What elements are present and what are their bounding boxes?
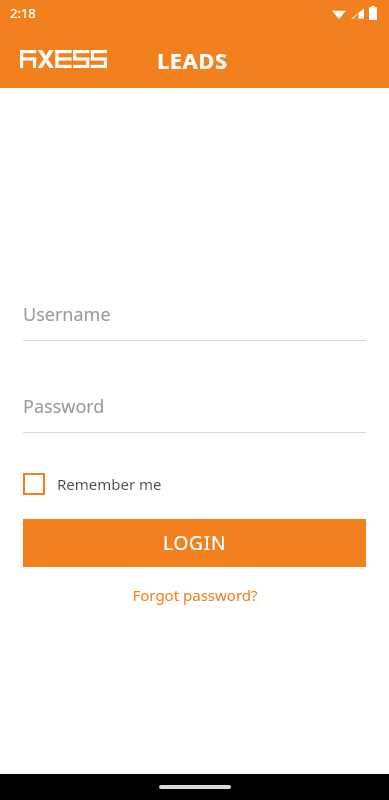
staticText: Username bbox=[23, 302, 111, 327]
button[interactable]: Username bbox=[23, 302, 366, 341]
button[interactable]: Password bbox=[23, 394, 366, 433]
button[interactable]: Forgot password? bbox=[124, 581, 266, 609]
staticText: 2:18 bbox=[10, 4, 36, 22]
staticText: LOGIN bbox=[163, 530, 227, 556]
staticText: Password bbox=[23, 394, 105, 419]
staticText: LEADS bbox=[157, 45, 228, 75]
staticText: Remember me bbox=[57, 474, 162, 494]
button[interactable]: Remember me bbox=[23, 473, 162, 495]
other: Home gesture bar bbox=[159, 785, 231, 789]
button[interactable]: LOGIN bbox=[23, 519, 366, 567]
